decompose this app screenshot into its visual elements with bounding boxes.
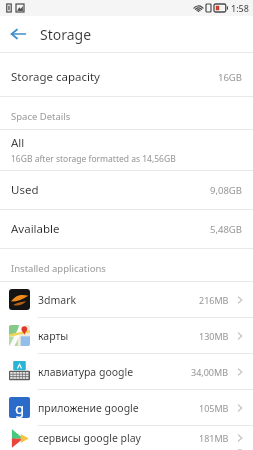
staticText: 34,00MB <box>191 366 229 378</box>
staticText: 9,08GB <box>210 184 242 197</box>
staticText: Used <box>11 182 39 198</box>
staticText: 16GB <box>218 71 242 84</box>
staticText: 216MB <box>199 294 229 306</box>
staticText: Space Details <box>11 110 71 123</box>
staticText: приложение google <box>38 401 139 415</box>
button[interactable]: Used <box>0 171 253 209</box>
staticText: All <box>11 135 25 151</box>
button[interactable]: g <box>0 390 253 425</box>
staticText: Storage <box>40 25 92 44</box>
staticText: сервисы google play <box>38 431 141 445</box>
staticText: 105MB <box>199 402 229 414</box>
staticText: клавиатура google <box>38 365 134 379</box>
staticText: Available <box>11 221 60 237</box>
staticText: 181MB <box>199 432 229 444</box>
button[interactable]: клавиатура google <box>0 354 253 389</box>
button[interactable]: Storage capacity <box>0 58 253 96</box>
staticText: Installed applications <box>11 262 106 275</box>
button[interactable]: 3dmark <box>0 282 253 317</box>
button[interactable]: сервисы google play <box>0 426 253 450</box>
staticText: 5,48GB <box>210 223 242 236</box>
staticText: 3dmark <box>38 293 77 307</box>
staticText: 16GB after storage formatted as 14,56GB <box>11 153 176 165</box>
staticText: g <box>15 398 25 418</box>
staticText: Storage capacity <box>11 69 100 85</box>
staticText: 1:58 <box>231 2 249 14</box>
staticText: 130MB <box>199 330 229 342</box>
button[interactable]: All <box>0 130 253 170</box>
button[interactable]: Available <box>0 210 253 248</box>
button[interactable]: карты <box>0 318 253 353</box>
button[interactable]: Back <box>0 16 36 52</box>
staticText: карты <box>38 329 69 343</box>
